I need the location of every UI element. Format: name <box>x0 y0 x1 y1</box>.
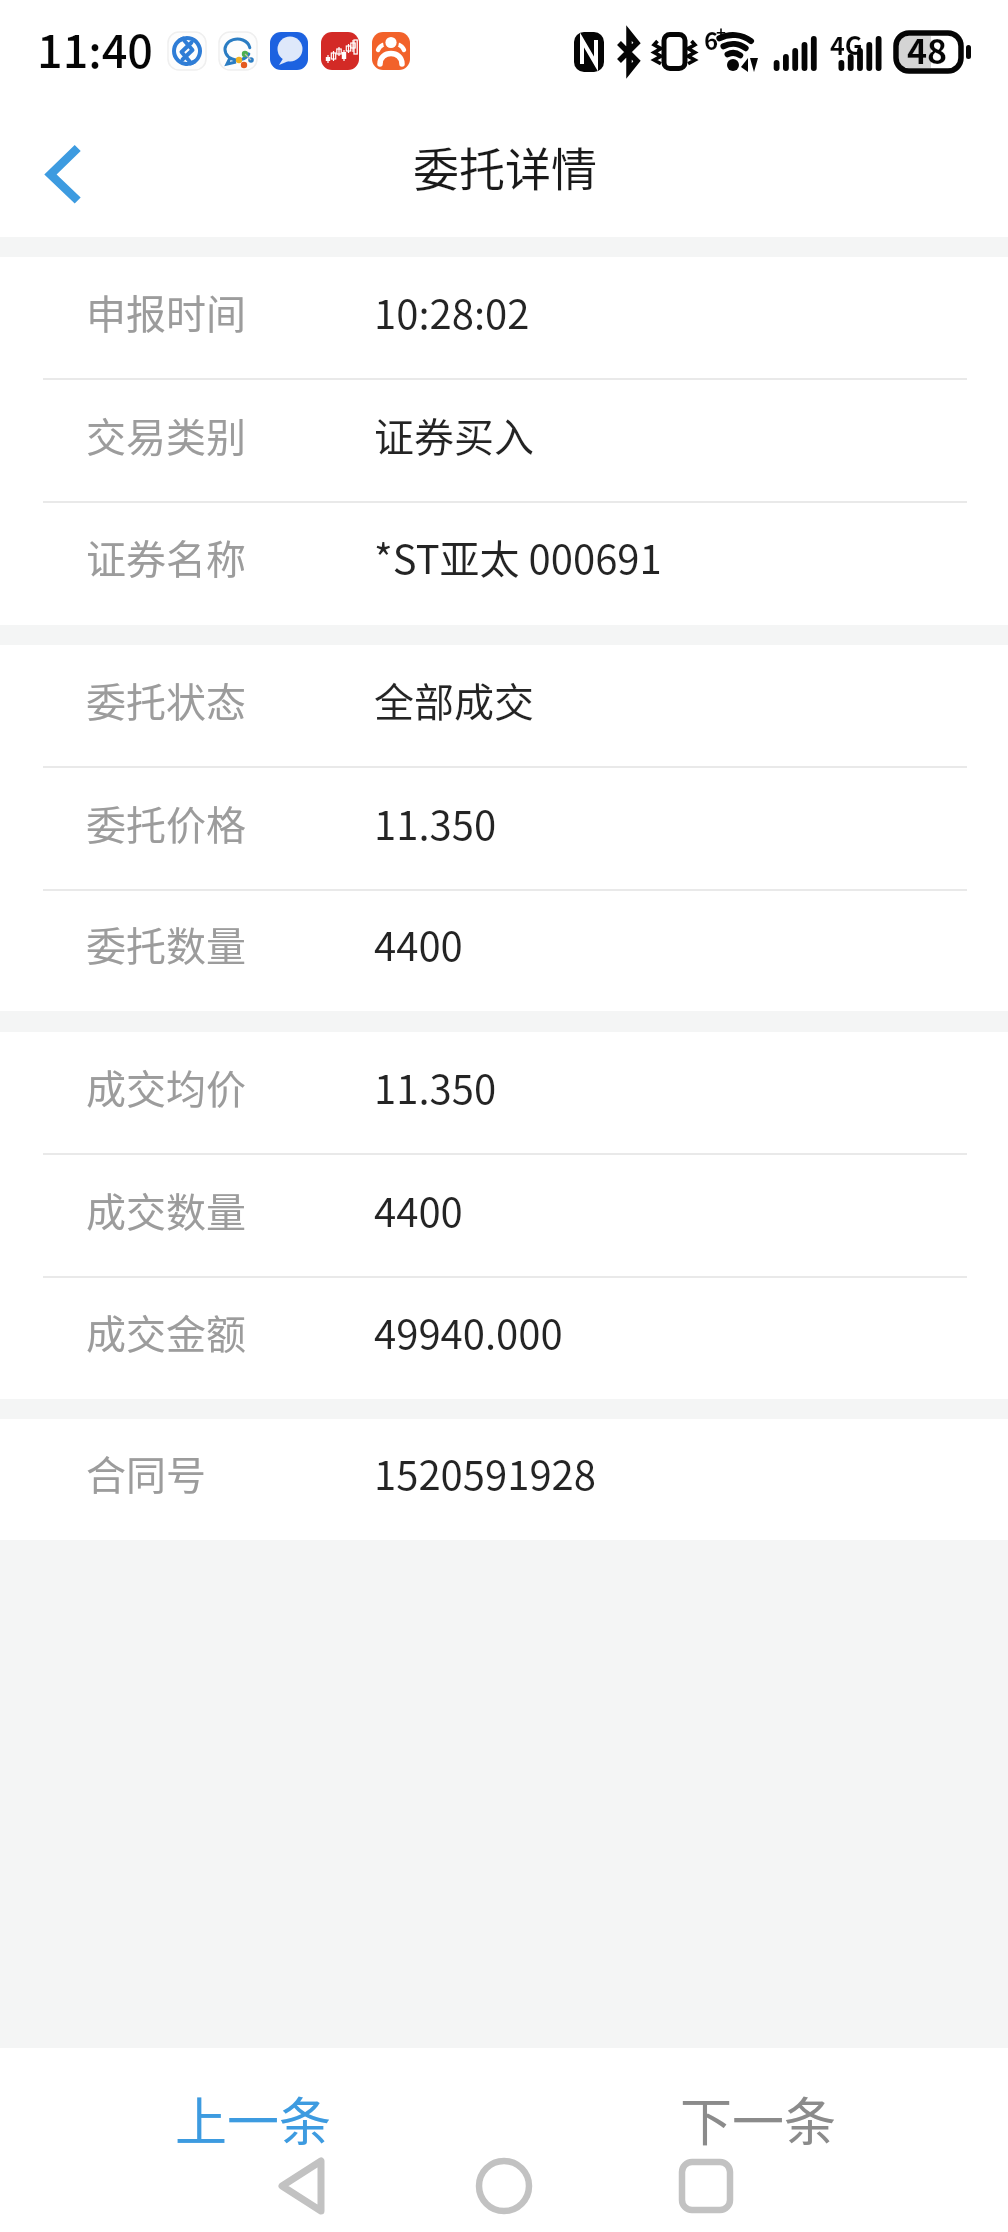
staticText: 上一条 <box>175 2081 332 2156</box>
staticText: 成交数量 <box>86 1181 246 1239</box>
button[interactable]: Back <box>256 2140 348 2232</box>
staticText: 11.350 <box>374 1058 497 1116</box>
staticText: 交易类别 <box>86 406 246 464</box>
button[interactable]: Home <box>458 2140 550 2232</box>
staticText: 成交金额 <box>86 1303 246 1361</box>
staticText: 1520591928 <box>374 1444 596 1502</box>
staticText: 证券买入 <box>374 406 534 464</box>
button[interactable]: 委托数量 <box>0 891 1008 1011</box>
button[interactable]: 成交均价 <box>0 1032 1008 1155</box>
staticText: 11:40 <box>37 16 154 81</box>
staticText: 11.350 <box>374 794 497 852</box>
staticText: 10:28:02 <box>374 283 530 341</box>
staticText: 4400 <box>374 915 463 973</box>
staticText: 4G <box>830 26 863 62</box>
staticText: 委托状态 <box>86 671 246 729</box>
button[interactable]: 成交金额 <box>0 1278 1008 1399</box>
button[interactable]: 下一条 <box>593 2048 923 2192</box>
staticText: 6 <box>704 22 719 57</box>
staticText: + <box>716 19 727 44</box>
staticText: 49940.000 <box>374 1303 563 1361</box>
button[interactable]: 证券名称 <box>0 503 1008 625</box>
button[interactable]: 委托价格 <box>0 768 1008 891</box>
staticText: 成交均价 <box>86 1058 246 1116</box>
button[interactable]: 委托状态 <box>0 645 1008 768</box>
staticText: 申报时间 <box>86 283 246 341</box>
staticText: 证券名称 <box>86 528 246 586</box>
staticText: 委托数量 <box>86 915 246 973</box>
button[interactable]: Back <box>0 109 104 229</box>
staticText: 下一条 <box>680 2081 837 2156</box>
staticText: 全部成交 <box>374 671 534 729</box>
staticText: 4400 <box>374 1181 463 1239</box>
staticText: 合同号 <box>86 1444 206 1502</box>
button[interactable]: 申报时间 <box>0 257 1008 380</box>
button[interactable]: 上一条 <box>88 2048 418 2192</box>
button[interactable]: Recent apps <box>660 2140 752 2232</box>
staticText: *ST亚太 000691 <box>374 528 662 586</box>
staticText: 委托详情 <box>413 133 597 200</box>
button[interactable]: 成交数量 <box>0 1155 1008 1278</box>
staticText: 48 <box>907 25 948 74</box>
staticText: 委托价格 <box>86 794 246 852</box>
button[interactable]: 交易类别 <box>0 380 1008 503</box>
button[interactable]: 合同号 <box>0 1419 1008 1540</box>
